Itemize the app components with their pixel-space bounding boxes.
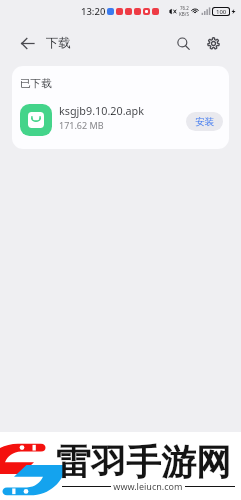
button[interactable]: Back (15, 32, 39, 54)
button[interactable]: Search (171, 32, 195, 54)
staticText: 雷羽手游网 (56, 440, 231, 484)
staticText: KB/S (179, 11, 189, 17)
staticText: 已下载 (20, 77, 52, 90)
staticText: 100 (216, 8, 227, 15)
staticText: www.leiucn.com (111, 480, 185, 492)
staticText: 下载 (46, 35, 71, 51)
button[interactable]: 安装 (186, 112, 223, 131)
staticText: 171.62 MB (59, 119, 104, 131)
staticText: 76.2 (180, 5, 189, 11)
button[interactable]: Settings (201, 32, 225, 54)
staticText: 13:20 (81, 5, 106, 18)
staticText: 安装 (195, 116, 214, 128)
staticText: ksgjb9.10.20.apk (59, 103, 145, 118)
